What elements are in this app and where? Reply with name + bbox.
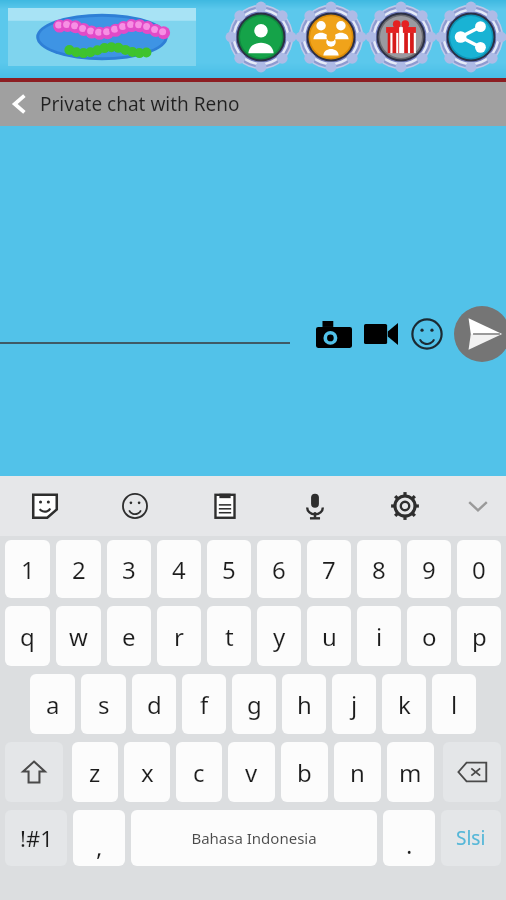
- staticText: g: [247, 688, 262, 721]
- staticText: p: [472, 620, 487, 653]
- staticText: Bahasa Indonesia: [191, 828, 317, 848]
- button[interactable]: Hide keyboard: [450, 476, 506, 536]
- button[interactable]: w: [56, 606, 101, 666]
- button[interactable]: Profile: [226, 2, 296, 72]
- button[interactable]: Voice input: [270, 476, 360, 536]
- button[interactable]: ,: [73, 810, 125, 866]
- button[interactable]: 5: [207, 540, 251, 598]
- button[interactable]: k: [382, 674, 426, 734]
- staticText: y: [273, 620, 286, 653]
- button[interactable]: p: [457, 606, 501, 666]
- button[interactable]: Share: [436, 2, 506, 72]
- staticText: 0: [472, 553, 486, 586]
- staticText: !#1: [20, 823, 53, 853]
- button[interactable]: Emoji: [90, 476, 180, 536]
- staticText: r: [174, 620, 184, 653]
- staticText: k: [398, 688, 411, 721]
- button[interactable]: u: [307, 606, 351, 666]
- staticText: c: [193, 756, 205, 789]
- staticText: .: [406, 828, 413, 861]
- button[interactable]: h: [282, 674, 326, 734]
- button[interactable]: b: [281, 742, 328, 802]
- button[interactable]: z: [72, 742, 118, 802]
- button[interactable]: 6: [257, 540, 301, 598]
- staticText: t: [225, 620, 234, 653]
- button[interactable]: 0: [457, 540, 501, 598]
- button[interactable]: q: [5, 606, 50, 666]
- staticText: 7: [322, 553, 336, 586]
- button[interactable]: .: [383, 810, 435, 866]
- button[interactable]: Gifts: [366, 2, 436, 72]
- staticText: j: [351, 688, 358, 721]
- staticText: Private chat with Reno: [40, 91, 240, 117]
- button[interactable]: f: [182, 674, 226, 734]
- button[interactable]: 1: [5, 540, 50, 598]
- staticText: b: [297, 756, 312, 789]
- button[interactable]: Back: [0, 82, 40, 126]
- staticText: f: [200, 688, 209, 721]
- button[interactable]: Clipboard: [180, 476, 270, 536]
- button[interactable]: r: [157, 606, 201, 666]
- staticText: d: [147, 688, 162, 721]
- staticText: 4: [172, 553, 186, 586]
- staticText: v: [245, 756, 258, 789]
- staticText: 2: [72, 553, 86, 586]
- button[interactable]: Camera: [310, 311, 358, 357]
- staticText: w: [69, 620, 88, 653]
- button[interactable]: i: [357, 606, 401, 666]
- button[interactable]: App logo: [8, 8, 196, 66]
- button[interactable]: Send: [454, 306, 506, 362]
- button[interactable]: Backspace: [443, 742, 501, 802]
- button[interactable]: 7: [307, 540, 351, 598]
- button[interactable]: Groups: [296, 2, 366, 72]
- button[interactable]: e: [107, 606, 151, 666]
- button[interactable]: 8: [357, 540, 401, 598]
- button[interactable]: m: [387, 742, 434, 802]
- button[interactable]: x: [124, 742, 170, 802]
- staticText: e: [122, 620, 136, 653]
- button[interactable]: j: [332, 674, 376, 734]
- button[interactable]: Bahasa Indonesia: [131, 810, 377, 866]
- staticText: 6: [272, 553, 286, 586]
- button[interactable]: Slsi: [441, 810, 501, 866]
- button[interactable]: d: [132, 674, 176, 734]
- staticText: h: [297, 688, 312, 721]
- button[interactable]: 9: [407, 540, 451, 598]
- button[interactable]: o: [407, 606, 451, 666]
- staticText: 1: [21, 553, 35, 586]
- button[interactable]: 4: [157, 540, 201, 598]
- button[interactable]: !#1: [5, 810, 67, 866]
- button[interactable]: a: [30, 674, 75, 734]
- staticText: x: [141, 756, 154, 789]
- button[interactable]: 2: [56, 540, 101, 598]
- button[interactable]: g: [232, 674, 276, 734]
- button[interactable]: Stickers: [0, 476, 90, 536]
- staticText: a: [46, 688, 60, 721]
- staticText: 3: [122, 553, 136, 586]
- staticText: u: [322, 620, 337, 653]
- staticText: s: [98, 688, 110, 721]
- staticText: Slsi: [456, 825, 486, 851]
- button[interactable]: 3: [107, 540, 151, 598]
- staticText: z: [89, 756, 101, 789]
- staticText: 5: [222, 553, 236, 586]
- button[interactable]: y: [257, 606, 301, 666]
- staticText: 8: [372, 553, 386, 586]
- button[interactable]: Shift: [5, 742, 63, 802]
- button[interactable]: v: [228, 742, 275, 802]
- staticText: ,: [96, 830, 103, 863]
- button[interactable]: Settings: [360, 476, 450, 536]
- staticText: n: [350, 756, 365, 789]
- staticText: o: [422, 620, 437, 653]
- staticText: q: [20, 620, 35, 653]
- button[interactable]: t: [207, 606, 251, 666]
- button[interactable]: l: [432, 674, 476, 734]
- button[interactable]: s: [81, 674, 126, 734]
- staticText: i: [376, 620, 383, 653]
- button[interactable]: Emoji: [404, 311, 450, 357]
- staticText: m: [399, 756, 422, 789]
- button[interactable]: n: [334, 742, 381, 802]
- button[interactable]: c: [176, 742, 222, 802]
- button[interactable]: Video: [358, 311, 404, 357]
